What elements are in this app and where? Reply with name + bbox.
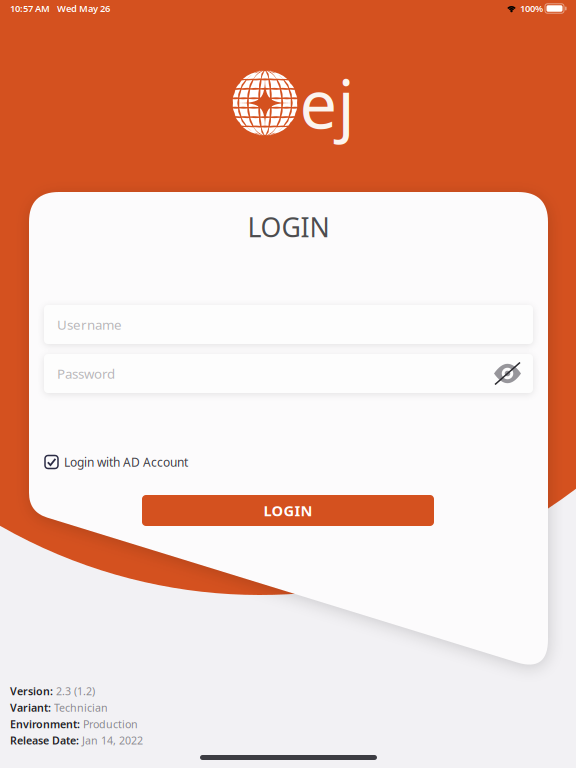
staticText: Jan 14, 2022 bbox=[82, 733, 143, 747]
staticText: Release Date: bbox=[10, 733, 79, 747]
staticText: Username bbox=[57, 316, 122, 333]
staticText: Wed May 26 bbox=[57, 2, 110, 15]
staticText: Technician bbox=[54, 700, 108, 715]
button[interactable]: LOGIN bbox=[142, 495, 434, 526]
staticText: LOGIN bbox=[247, 209, 329, 245]
staticText: Production bbox=[83, 717, 138, 731]
staticText: 10:57 AM bbox=[10, 2, 50, 15]
staticText: Version: bbox=[10, 684, 53, 698]
staticText: Password bbox=[57, 365, 115, 382]
staticText: 100% bbox=[520, 2, 543, 15]
staticText: ej bbox=[299, 59, 354, 147]
staticText: 2.3 (1.2) bbox=[56, 684, 95, 698]
button[interactable]: Show password bbox=[494, 364, 521, 383]
button[interactable]: Login with AD Account bbox=[45, 452, 188, 472]
staticText: Login with AD Account bbox=[64, 454, 188, 470]
staticText: Environment: bbox=[10, 717, 80, 731]
staticText: Variant: bbox=[10, 700, 51, 715]
staticText: LOGIN bbox=[263, 501, 312, 520]
